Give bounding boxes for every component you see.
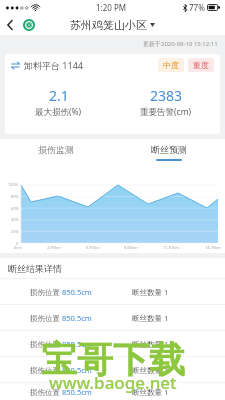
staticText: 最大损伤(%) bbox=[35, 106, 82, 118]
button[interactable]: 损伤位置 bbox=[0, 331, 225, 356]
staticText: 850.5cm bbox=[62, 365, 92, 375]
staticText: 重度 bbox=[193, 60, 209, 70]
staticText: 宝哥下载 bbox=[41, 337, 185, 382]
staticText: 2383 bbox=[150, 86, 183, 105]
button[interactable]: 断丝预测 bbox=[112, 139, 225, 165]
staticText: 850.5cm bbox=[62, 313, 92, 323]
staticText: 40% bbox=[11, 217, 19, 222]
button[interactable]: 损伤位置 bbox=[0, 279, 225, 304]
staticText: 损伤位置 bbox=[30, 339, 62, 349]
staticText: 2.1 bbox=[49, 86, 69, 105]
staticText: 断丝结果详情 bbox=[8, 263, 62, 274]
staticText: 8.86km bbox=[124, 245, 138, 250]
staticText: 850.5cm bbox=[62, 339, 92, 349]
staticText: 断丝数量 1 bbox=[132, 387, 169, 397]
staticText: 断丝预测 bbox=[151, 144, 187, 155]
button[interactable]: 损伤监测 bbox=[0, 139, 112, 165]
staticText: 2.95km bbox=[47, 245, 61, 250]
button[interactable]: 损伤位置 bbox=[0, 383, 225, 400]
button[interactable]: Location bbox=[19, 15, 39, 35]
button[interactable]: 损伤位置 bbox=[0, 357, 225, 382]
staticText: www.baoge.net bbox=[49, 371, 177, 394]
staticText: 100% bbox=[8, 182, 19, 187]
staticText: 苏州鸡笼山小区 bbox=[70, 18, 147, 32]
button[interactable]: Back bbox=[0, 15, 19, 35]
button[interactable]: 重度 bbox=[188, 58, 214, 72]
button[interactable]: 损伤位置 bbox=[0, 305, 225, 330]
staticText: 断丝数量 1 bbox=[132, 313, 169, 323]
staticText: 20% bbox=[11, 229, 19, 234]
staticText: 中度 bbox=[163, 60, 179, 70]
staticText: 0cm bbox=[14, 245, 22, 250]
staticText: 11.81km bbox=[163, 245, 180, 250]
staticText: 断丝数量 1 bbox=[132, 365, 169, 375]
staticText: 重要告警(cm) bbox=[140, 106, 192, 118]
staticText: 14.76km bbox=[205, 245, 222, 250]
staticText: 80% bbox=[11, 194, 19, 199]
staticText: 60% bbox=[11, 206, 19, 211]
staticText: 1:20 PM bbox=[96, 2, 127, 13]
staticText: 损伤位置 bbox=[30, 365, 62, 375]
staticText: 5.91km bbox=[86, 245, 100, 250]
staticText: 更新于2020-09-10 15:12:11 bbox=[143, 40, 218, 48]
staticText: 损伤位置 bbox=[30, 387, 62, 397]
staticText: 损伤监测 bbox=[38, 144, 74, 155]
staticText: 0 bbox=[16, 241, 19, 246]
staticText: 断丝数量 1 bbox=[132, 287, 169, 297]
staticText: 850.5cm bbox=[62, 387, 92, 397]
staticText: 850.5cm bbox=[62, 287, 92, 297]
staticText: 断丝数量 1 bbox=[132, 339, 169, 349]
button[interactable]: 中度 bbox=[158, 58, 184, 72]
staticText: 损伤位置 bbox=[30, 287, 62, 297]
staticText: 77% bbox=[189, 2, 205, 13]
staticText: 损伤位置 bbox=[30, 313, 62, 323]
staticText: 卸料平台 1144 bbox=[24, 59, 83, 71]
button[interactable]: 苏州鸡笼山小区 bbox=[68, 16, 157, 34]
